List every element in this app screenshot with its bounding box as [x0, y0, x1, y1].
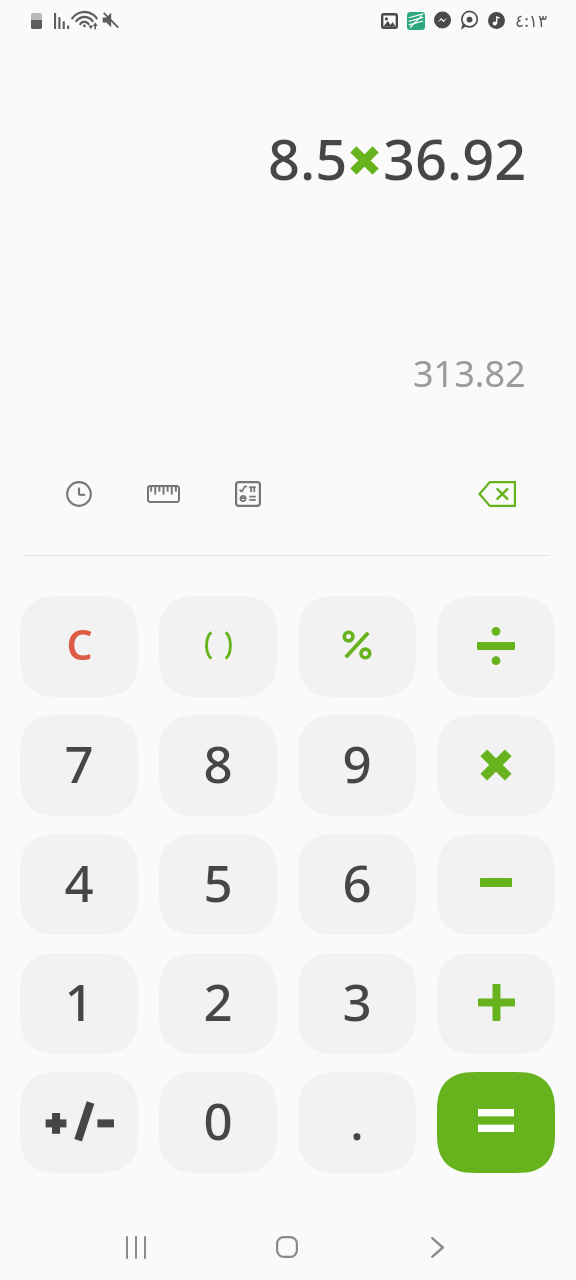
button[interactable]: Parentheses	[159, 596, 277, 697]
button[interactable]: 7	[20, 715, 138, 816]
staticText: 0	[203, 1085, 233, 1154]
staticText: ٤:١٣	[515, 9, 548, 32]
button[interactable]: Back	[411, 1221, 463, 1273]
button[interactable]: 8	[159, 715, 277, 816]
staticText: 7	[64, 728, 94, 797]
staticText: 4	[64, 847, 94, 916]
button[interactable]: Recents	[110, 1221, 162, 1273]
button[interactable]: Home	[261, 1221, 313, 1273]
button[interactable]: 0	[159, 1072, 277, 1173]
button[interactable]: 4	[20, 834, 138, 935]
staticText: 5	[203, 847, 233, 916]
button[interactable]: Plus	[437, 953, 555, 1054]
button[interactable]: 3	[298, 953, 416, 1054]
button[interactable]: 6	[298, 834, 416, 935]
staticText: 1	[64, 966, 94, 1035]
button[interactable]: Percent	[298, 596, 416, 697]
button[interactable]: Minus	[437, 834, 555, 935]
staticText: .	[350, 1085, 364, 1154]
button[interactable]: Scientific calculator	[224, 470, 272, 518]
staticText: 9	[342, 728, 372, 797]
staticText: 2	[203, 966, 233, 1035]
button[interactable]: 9	[298, 715, 416, 816]
button[interactable]: Backspace	[473, 470, 521, 518]
staticText: 8.5	[268, 120, 348, 196]
staticText: 313.82	[413, 349, 526, 398]
button[interactable]: Equals	[437, 1072, 555, 1173]
staticText: 3	[342, 966, 372, 1035]
button[interactable]: Multiply	[437, 715, 555, 816]
button[interactable]: C	[20, 596, 138, 697]
button[interactable]: 5	[159, 834, 277, 935]
button[interactable]: Plus minus	[20, 1072, 138, 1173]
staticText: C	[66, 616, 93, 672]
button[interactable]: 1	[20, 953, 138, 1054]
button[interactable]: History	[55, 470, 103, 518]
staticText: 6	[342, 847, 372, 916]
button[interactable]: .	[298, 1072, 416, 1173]
button[interactable]: Divide	[437, 596, 555, 697]
button[interactable]: 2	[159, 953, 277, 1054]
staticText: 36.92	[383, 120, 527, 196]
staticText: 8	[203, 728, 233, 797]
button[interactable]: Unit converter	[139, 470, 187, 518]
